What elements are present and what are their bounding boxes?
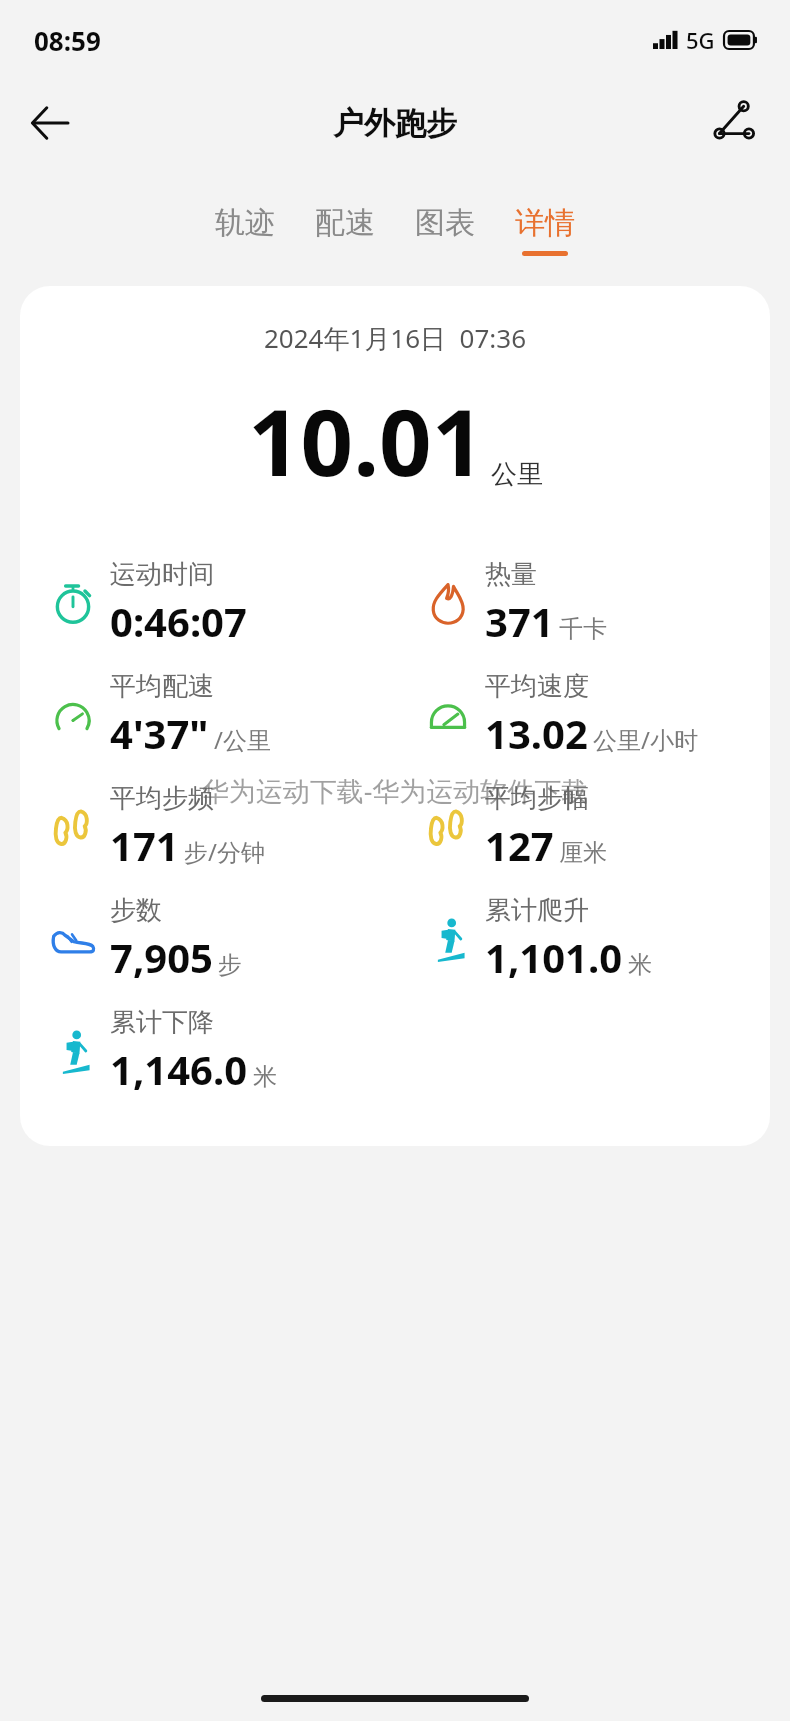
button[interactable]: 运动时间	[20, 547, 395, 659]
staticText: 平均步幅	[485, 782, 589, 815]
button[interactable]: 热量	[395, 547, 770, 659]
button[interactable]: 图表	[395, 200, 495, 260]
staticText: 热量	[485, 558, 537, 591]
button[interactable]: 步数	[20, 883, 395, 995]
staticText: 5G	[686, 25, 715, 55]
staticText: 127	[485, 818, 554, 872]
staticText: 2024年1月16日 07:36	[20, 320, 770, 356]
staticText: 371	[485, 594, 554, 648]
staticText: 累计爬升	[485, 894, 589, 927]
staticText: 10.01	[248, 378, 485, 503]
staticText: 轨迹	[215, 204, 275, 242]
staticText: 4'37"	[110, 706, 209, 760]
staticText: 平均速度	[485, 670, 589, 703]
staticText: 运动时间	[110, 558, 214, 591]
button[interactable]: 轨迹	[195, 200, 295, 260]
staticText: 步/分钟	[184, 835, 265, 868]
staticText: 公里/小时	[593, 723, 698, 756]
staticText: 平均配速	[110, 670, 214, 703]
button[interactable]: 平均速度	[395, 659, 770, 771]
staticText: 配速	[315, 204, 375, 242]
staticText: 08:59	[34, 23, 101, 58]
staticText: 1,101.0	[485, 930, 623, 984]
button[interactable]: 详情	[495, 200, 595, 260]
staticText: 0:46:07	[110, 594, 247, 648]
staticText: 米	[628, 950, 652, 980]
staticText: 米	[253, 1062, 277, 1092]
staticText: 7,905	[110, 930, 213, 984]
staticText: 详情	[515, 204, 575, 242]
staticText: 171	[110, 818, 179, 872]
staticText: 户外跑步	[333, 104, 457, 143]
button[interactable]: 平均配速	[20, 659, 395, 771]
staticText: 图表	[415, 204, 475, 242]
staticText: 步数	[110, 894, 162, 927]
staticText: 华为运动下载-华为运动软件下载	[0, 772, 790, 809]
button[interactable]: 平均步幅	[395, 771, 770, 883]
staticText: /公里	[214, 723, 271, 756]
button[interactable]: 累计下降	[20, 995, 395, 1107]
staticText: 累计下降	[110, 1006, 214, 1039]
staticText: 1,146.0	[110, 1042, 248, 1096]
button[interactable]: 累计爬升	[395, 883, 770, 995]
staticText: 厘米	[559, 838, 607, 868]
button[interactable]: 平均步频	[20, 771, 395, 883]
staticText: 步	[218, 950, 242, 980]
staticText: 公里	[491, 458, 543, 491]
button[interactable]: Back	[14, 87, 86, 159]
staticText: 千卡	[559, 614, 607, 644]
staticText: 13.02	[485, 706, 588, 760]
button[interactable]: Share	[698, 87, 770, 159]
staticText: 平均步频	[110, 782, 214, 815]
button[interactable]: 配速	[295, 200, 395, 260]
